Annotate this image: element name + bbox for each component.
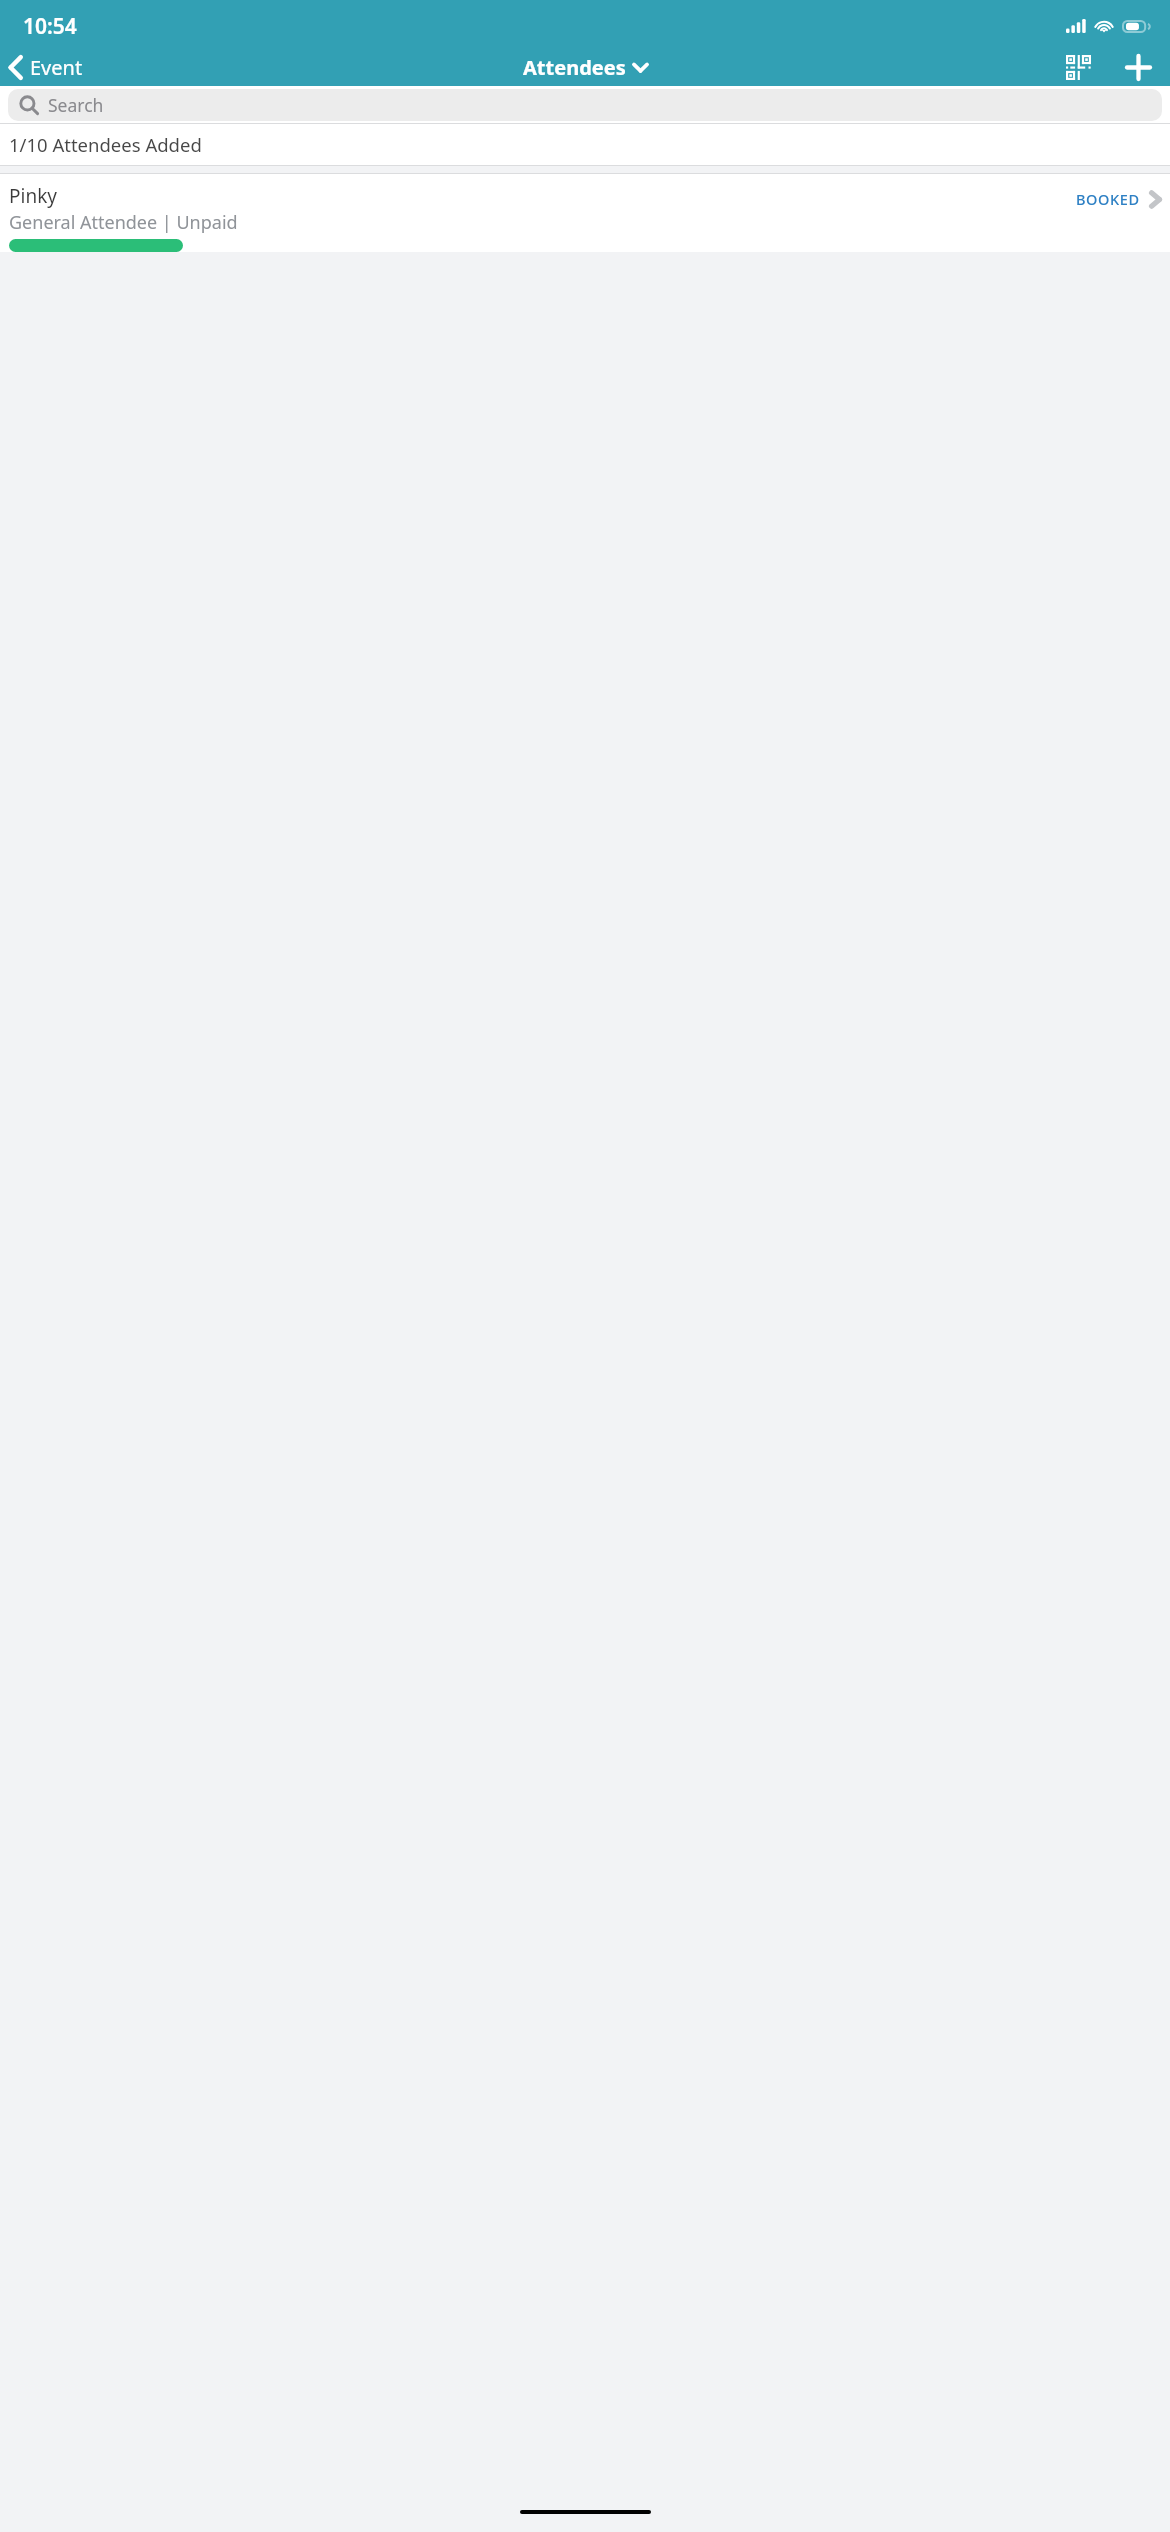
staticText: BOOKED xyxy=(1076,189,1140,209)
staticText: Event xyxy=(30,54,83,81)
button[interactable]: Event xyxy=(0,48,93,86)
button[interactable]: Add attendee xyxy=(1116,48,1160,86)
button[interactable]: Attendees xyxy=(517,48,654,86)
staticText: Attendees xyxy=(523,54,626,81)
button[interactable]: 1/10 Attendees Added xyxy=(0,124,1170,165)
staticText: General Attendee | Unpaid xyxy=(9,210,238,235)
button[interactable]: Pinky xyxy=(0,174,1170,252)
button[interactable]: Search xyxy=(8,89,1162,121)
button[interactable]: Scan QR code xyxy=(1056,48,1100,86)
staticText: 10:54 xyxy=(23,12,77,41)
staticText: Pinky xyxy=(9,183,57,209)
staticText: Search xyxy=(48,93,104,117)
staticText: 1/10 Attendees Added xyxy=(9,132,202,157)
